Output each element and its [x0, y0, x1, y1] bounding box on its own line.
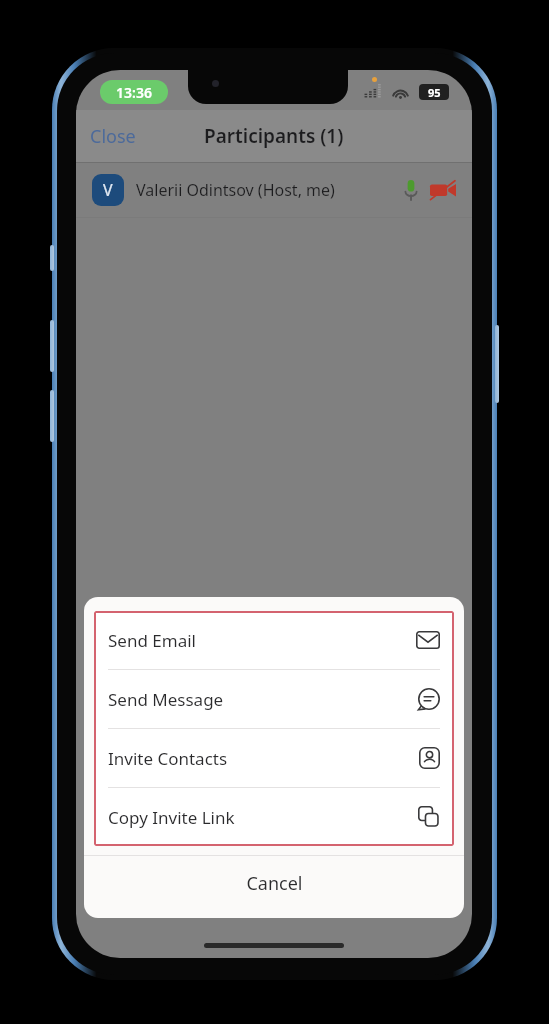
other: Send Email — [416, 631, 440, 649]
other: Copy Invite Link — [418, 806, 440, 828]
button[interactable]: Invite Contacts — [94, 729, 454, 787]
staticText: Copy Invite Link — [108, 806, 235, 829]
staticText: V — [103, 179, 113, 201]
other: Camera off — [430, 180, 456, 200]
staticText: 95 — [428, 85, 441, 100]
staticText: Participants (1) — [204, 123, 344, 149]
staticText: Cancel — [246, 871, 303, 896]
button[interactable]: Copy Invite Link — [94, 788, 454, 846]
button[interactable]: V — [76, 163, 472, 217]
staticText: Send Email — [108, 629, 196, 652]
staticText: 13:36 — [116, 83, 152, 102]
staticText: Valerii Odintsov (Host, me) — [136, 179, 335, 201]
staticText: Invite Contacts — [108, 747, 228, 770]
button[interactable]: Send Email — [94, 611, 454, 669]
other: Invite Contacts — [419, 747, 440, 769]
other: Send Message — [418, 688, 440, 710]
staticText: Close — [90, 124, 136, 149]
button[interactable]: Send Message — [94, 670, 454, 728]
staticText: Send Message — [108, 688, 224, 711]
button[interactable]: Close — [76, 116, 150, 157]
button[interactable]: Cancel — [84, 856, 464, 910]
other: Microphone on — [404, 179, 418, 201]
